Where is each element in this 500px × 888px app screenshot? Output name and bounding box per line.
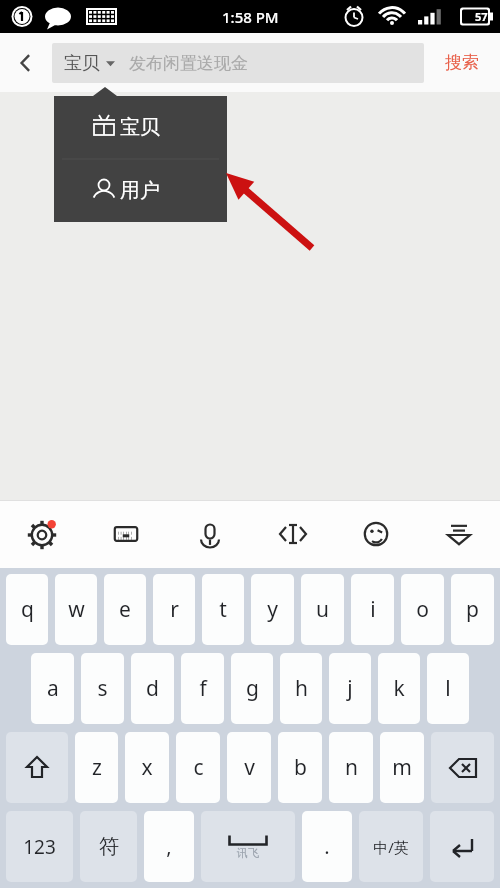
staticText: f <box>199 674 207 703</box>
button[interactable]: 搜索 <box>424 33 500 92</box>
button[interactable]: s <box>81 653 124 724</box>
button[interactable]: c <box>176 732 220 803</box>
button[interactable]: x <box>125 732 169 803</box>
button[interactable]: t <box>202 574 244 645</box>
button[interactable]: , <box>144 811 194 882</box>
staticText: p <box>466 595 479 624</box>
button[interactable]: m <box>380 732 424 803</box>
button[interactable]: Keyboard layout <box>84 500 168 568</box>
staticText: 57 <box>475 9 488 24</box>
button[interactable]: a <box>31 653 74 724</box>
button[interactable]: l <box>427 653 469 724</box>
button[interactable]: z <box>75 732 118 803</box>
button[interactable]: Space <box>201 811 295 882</box>
staticText: 宝贝 <box>120 115 160 140</box>
staticText: x <box>141 753 153 782</box>
staticText: . <box>324 833 330 860</box>
staticText: 中/英 <box>373 837 409 857</box>
staticText: 1:58 PM <box>222 7 279 27</box>
button[interactable]: Shift <box>6 732 68 803</box>
staticText: 搜索 <box>445 52 479 73</box>
staticText: l <box>445 674 451 703</box>
button[interactable]: 符 <box>80 811 137 882</box>
button[interactable]: Cursor move <box>251 500 334 568</box>
staticText: 123 <box>23 834 56 860</box>
button[interactable]: Emoji <box>334 500 417 568</box>
button[interactable]: p <box>451 574 494 645</box>
staticText: g <box>246 674 259 703</box>
button[interactable]: 123 <box>6 811 73 882</box>
staticText: n <box>345 753 358 782</box>
button[interactable]: y <box>251 574 294 645</box>
staticText: 发布闲置送现金 <box>129 53 248 74</box>
staticText: j <box>347 674 353 703</box>
button[interactable]: Voice input <box>168 500 251 568</box>
button[interactable]: 宝贝 <box>52 43 424 83</box>
button[interactable]: Hide keyboard <box>417 500 500 568</box>
button[interactable]: v <box>227 732 271 803</box>
button[interactable]: f <box>181 653 224 724</box>
button[interactable]: d <box>131 653 174 724</box>
button[interactable]: 用户 <box>54 159 227 222</box>
button[interactable]: e <box>104 574 146 645</box>
staticText: z <box>92 753 102 782</box>
staticText: t <box>219 595 227 624</box>
button[interactable]: Back <box>0 33 52 92</box>
button[interactable]: r <box>153 574 195 645</box>
button[interactable]: Backspace <box>431 732 494 803</box>
staticText: m <box>392 753 412 782</box>
staticText: v <box>244 753 255 782</box>
button[interactable]: u <box>301 574 344 645</box>
staticText: 宝贝 <box>64 52 100 75</box>
staticText: y <box>267 595 278 624</box>
button[interactable]: 中/英 <box>359 811 423 882</box>
staticText: c <box>193 753 204 782</box>
button[interactable]: Enter <box>430 811 494 882</box>
button[interactable]: q <box>6 574 48 645</box>
button[interactable]: n <box>329 732 373 803</box>
staticText: a <box>47 674 59 703</box>
staticText: , <box>166 833 172 860</box>
button[interactable]: g <box>231 653 273 724</box>
button[interactable]: b <box>278 732 322 803</box>
button[interactable]: j <box>329 653 371 724</box>
staticText: 符 <box>99 834 119 859</box>
staticText: d <box>146 674 159 703</box>
staticText: k <box>393 674 405 703</box>
staticText: r <box>170 595 179 624</box>
staticText: b <box>294 753 307 782</box>
button[interactable]: k <box>378 653 420 724</box>
staticText: 讯飞 <box>237 846 259 860</box>
button[interactable]: o <box>401 574 444 645</box>
staticText: e <box>119 595 131 624</box>
staticText: 用户 <box>120 178 160 203</box>
button[interactable]: 宝贝 <box>54 96 227 159</box>
staticText: i <box>370 595 376 624</box>
staticText: w <box>68 595 85 624</box>
staticText: q <box>21 595 34 624</box>
staticText: u <box>316 595 329 624</box>
button[interactable]: Settings <box>0 500 84 568</box>
button[interactable]: i <box>351 574 394 645</box>
button[interactable]: w <box>55 574 97 645</box>
staticText: h <box>295 674 308 703</box>
staticText: o <box>416 595 429 624</box>
button[interactable]: h <box>280 653 322 724</box>
button[interactable]: . <box>302 811 352 882</box>
staticText: s <box>97 674 108 703</box>
